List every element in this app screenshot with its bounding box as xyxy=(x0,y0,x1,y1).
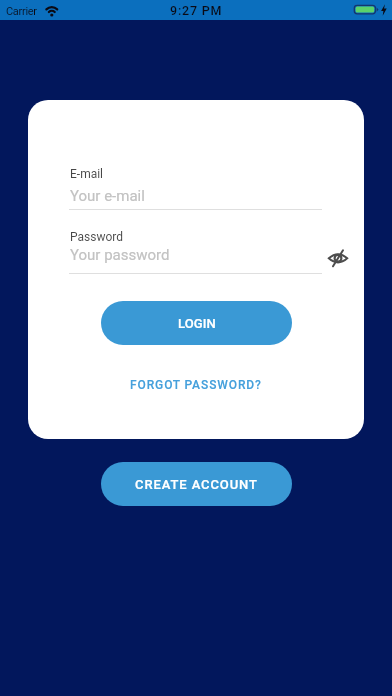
staticText: 9:27 PM xyxy=(170,3,223,18)
button[interactable] xyxy=(324,245,352,270)
staticText: CREATE ACCOUNT xyxy=(135,477,258,492)
button[interactable] xyxy=(69,224,322,275)
button[interactable] xyxy=(69,160,322,211)
staticText: E-mail xyxy=(70,167,104,181)
staticText: Your password xyxy=(70,246,170,264)
staticText: FORGOT PASSWORD? xyxy=(130,378,262,392)
button[interactable]: FORGOT PASSWORD? xyxy=(130,378,262,392)
staticText: LOGIN xyxy=(178,316,216,331)
button[interactable]: LOGIN xyxy=(101,301,292,345)
staticText: Password xyxy=(70,230,124,244)
button[interactable]: CREATE ACCOUNT xyxy=(101,462,292,506)
staticText: Carrier xyxy=(6,5,37,18)
staticText: Your e-mail xyxy=(70,187,145,205)
